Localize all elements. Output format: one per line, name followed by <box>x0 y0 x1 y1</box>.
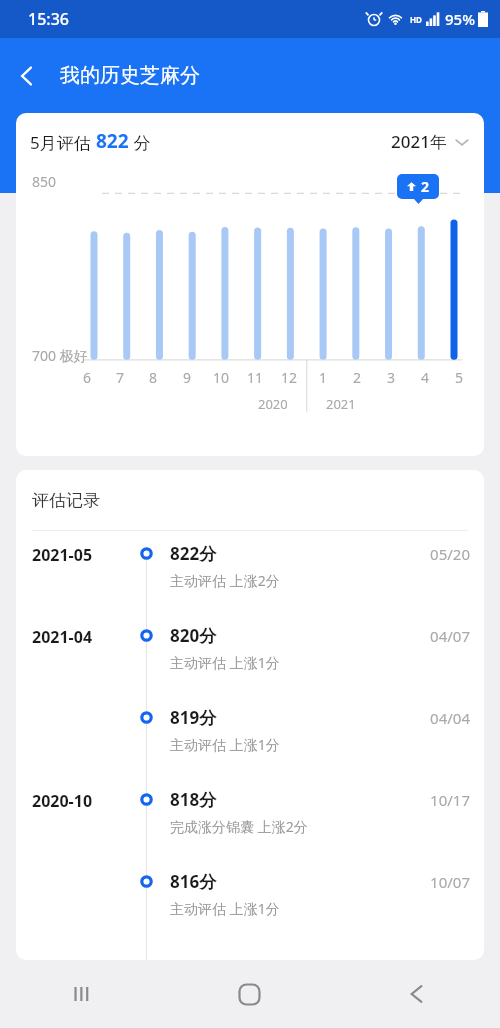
staticText: 评估记录 <box>32 490 100 511</box>
staticText: 9 <box>183 368 192 387</box>
staticText: 2021-04 <box>32 626 93 648</box>
staticText: 完成涨分锦囊 上涨2分 <box>170 817 308 836</box>
staticText: 95% <box>445 9 475 29</box>
staticText: 850 <box>32 172 57 191</box>
staticText: 11 <box>247 368 264 387</box>
staticText: 10 <box>213 368 230 387</box>
staticText: 04/07 <box>430 626 470 646</box>
staticText: 8 <box>149 368 158 387</box>
staticText: 7 <box>116 368 125 387</box>
staticText: 5月评估 <box>30 131 96 154</box>
staticText: 主动评估 上涨1分 <box>170 735 280 754</box>
staticText: 820分 <box>170 624 217 647</box>
staticText: 我的历史芝麻分 <box>60 63 200 88</box>
staticText: 分 <box>129 131 151 154</box>
staticText: 2 <box>421 177 430 196</box>
staticText: 3 <box>387 368 396 387</box>
staticText: 819分 <box>170 706 217 729</box>
button[interactable]: Back <box>0 49 54 103</box>
staticText: 2 <box>353 368 362 387</box>
staticText: 2021-05 <box>32 544 93 566</box>
button[interactable]: 816分 <box>16 859 484 941</box>
staticText: 10/07 <box>430 872 470 892</box>
staticText: 10/17 <box>430 790 470 810</box>
button[interactable]: Recents <box>0 960 166 1028</box>
button[interactable]: 2021年 <box>391 130 470 153</box>
staticText: 1 <box>319 368 328 387</box>
staticText: 5 <box>455 368 464 387</box>
staticText: 2020-10 <box>32 790 93 812</box>
staticText: 04/04 <box>430 708 470 728</box>
staticText: 12 <box>281 368 298 387</box>
staticText: 主动评估 上涨1分 <box>170 899 280 918</box>
staticText: 818分 <box>170 788 217 811</box>
staticText: 主动评估 上涨2分 <box>170 571 280 590</box>
button[interactable]: 2021-05 <box>16 531 484 613</box>
button[interactable]: 2020-10 <box>16 777 484 859</box>
staticText: 822分 <box>170 542 217 565</box>
staticText: 主动评估 上涨1分 <box>170 653 280 672</box>
staticText: 6 <box>83 368 92 387</box>
button[interactable]: Back <box>333 960 500 1028</box>
staticText: 05/20 <box>430 544 470 564</box>
staticText: 4 <box>421 368 430 387</box>
button[interactable]: 2021-04 <box>16 613 484 695</box>
staticText: 15:36 <box>28 8 69 30</box>
button[interactable]: 819分 <box>16 695 484 777</box>
button[interactable]: Home <box>166 960 333 1028</box>
staticText: 700 极好 <box>32 346 88 365</box>
staticText: HD <box>410 14 422 25</box>
staticText: 2021年 <box>391 130 447 153</box>
staticText: 2020 <box>258 395 288 413</box>
staticText: 2021 <box>326 395 356 413</box>
staticText: 816分 <box>170 870 217 893</box>
staticText: 822 <box>96 128 129 154</box>
